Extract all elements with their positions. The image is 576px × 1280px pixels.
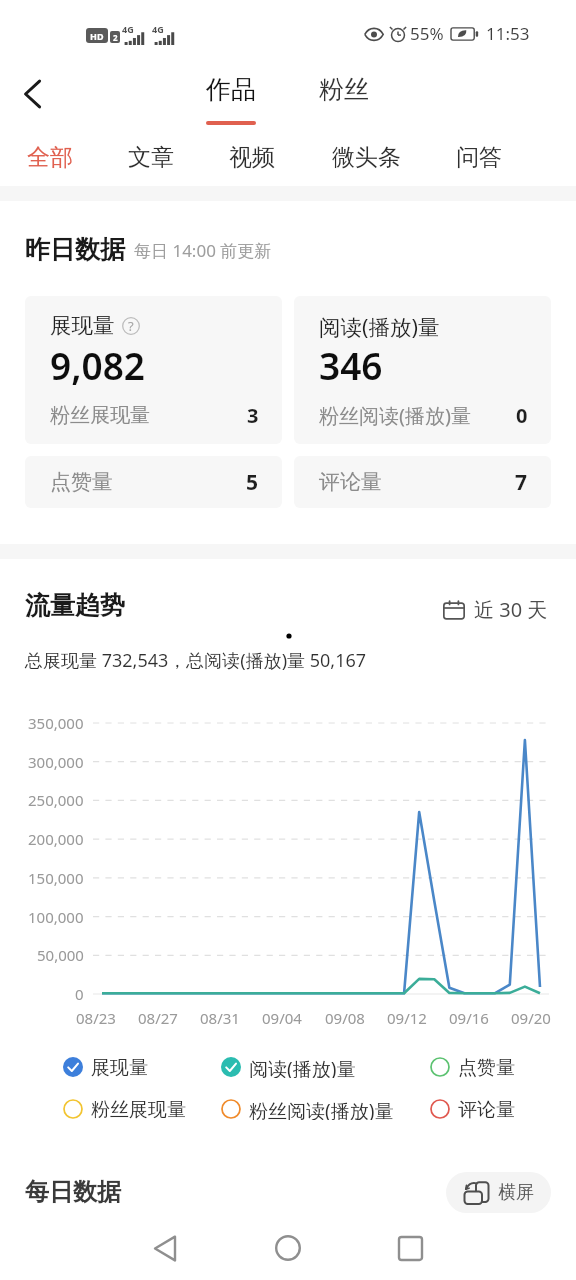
staticText: 总展现量 732,543，总阅读(播放)量 50,167 xyxy=(25,648,367,673)
staticText: 09/08 xyxy=(325,1008,365,1028)
staticText: 350,000 xyxy=(28,713,84,733)
staticText: 2 xyxy=(113,32,118,43)
button[interactable]: 粉丝 xyxy=(309,66,379,116)
staticText: 评论量 xyxy=(319,469,382,495)
button[interactable]: Back xyxy=(6,68,58,120)
button[interactable]: Home xyxy=(260,1220,316,1276)
staticText: 9,082 xyxy=(50,340,145,390)
staticText: 4G xyxy=(122,23,134,35)
button[interactable]: 文章 xyxy=(121,132,181,182)
staticText: 微头条 xyxy=(332,143,401,172)
staticText: 展现量 xyxy=(91,1056,148,1078)
button[interactable]: 阅读(播放)量 xyxy=(294,296,551,444)
staticText: 55% xyxy=(410,22,444,45)
staticText: 08/31 xyxy=(200,1008,240,1028)
staticText: 250,000 xyxy=(28,790,84,810)
button[interactable]: 作品 xyxy=(196,66,266,126)
staticText: 点赞量 xyxy=(50,469,113,495)
staticText: 粉丝 xyxy=(309,74,379,105)
staticText: 点赞量 xyxy=(458,1056,515,1078)
staticText: 0 xyxy=(516,402,528,429)
staticText: HD xyxy=(90,30,104,42)
staticText: 50,000 xyxy=(37,945,84,965)
staticText: 展现量 xyxy=(50,312,115,339)
staticText: 300,000 xyxy=(28,752,84,772)
button[interactable]: 微头条 xyxy=(324,132,408,182)
staticText: 粉丝展现量 xyxy=(50,403,150,428)
staticText: 346 xyxy=(319,340,383,390)
button[interactable]: Recent apps xyxy=(382,1220,438,1276)
staticText: 4G xyxy=(152,23,164,35)
staticText: 问答 xyxy=(456,143,502,172)
staticText: ? xyxy=(128,317,134,335)
staticText: 11:53 xyxy=(486,22,530,45)
button[interactable]: 全部 xyxy=(20,132,80,182)
button[interactable]: 点赞量 xyxy=(430,1056,515,1078)
button[interactable]: 视频 xyxy=(222,132,282,182)
staticText: 横屏 xyxy=(498,1181,534,1204)
staticText: 粉丝展现量 xyxy=(91,1098,186,1120)
button[interactable]: 展现量 xyxy=(25,296,282,444)
staticText: 100,000 xyxy=(28,907,84,927)
button[interactable]: 评论量 xyxy=(294,456,551,508)
staticText: 0 xyxy=(75,984,84,1004)
staticText: 每日数据 xyxy=(25,1177,121,1207)
button[interactable]: 近 30 天 xyxy=(443,596,548,623)
staticText: 7 xyxy=(515,468,528,497)
staticText: 08/23 xyxy=(76,1008,116,1028)
staticText: 3 xyxy=(247,402,259,429)
staticText: 近 30 天 xyxy=(474,596,548,623)
staticText: 阅读(播放)量 xyxy=(249,1056,356,1078)
button[interactable]: 横屏 xyxy=(446,1172,551,1213)
staticText: 5 xyxy=(246,468,259,497)
staticText: 09/20 xyxy=(511,1008,551,1028)
button[interactable]: 阅读(播放)量 xyxy=(221,1056,356,1078)
staticText: 150,000 xyxy=(28,868,84,888)
staticText: 粉丝阅读(播放)量 xyxy=(249,1098,394,1120)
staticText: 昨日数据 xyxy=(25,234,125,265)
staticText: 文章 xyxy=(128,143,174,172)
staticText: 流量趋势 xyxy=(25,590,125,621)
staticText: 视频 xyxy=(229,143,275,172)
staticText: 200,000 xyxy=(28,829,84,849)
button[interactable]: 点赞量 xyxy=(25,456,282,508)
button[interactable]: 展现量 xyxy=(63,1056,148,1078)
staticText: 阅读(播放)量 xyxy=(319,312,440,341)
button[interactable]: Back xyxy=(137,1220,193,1276)
staticText: 09/16 xyxy=(449,1008,489,1028)
staticText: 09/04 xyxy=(262,1008,302,1028)
button[interactable]: 问答 xyxy=(449,132,509,182)
staticText: 评论量 xyxy=(458,1098,515,1120)
staticText: 09/12 xyxy=(387,1008,427,1028)
staticText: 08/27 xyxy=(138,1008,178,1028)
staticText: 作品 xyxy=(196,74,266,105)
staticText: 每日 14:00 前更新 xyxy=(134,239,272,262)
staticText: 全部 xyxy=(27,143,73,172)
button[interactable]: 评论量 xyxy=(430,1098,515,1120)
staticText: 粉丝阅读(播放)量 xyxy=(319,402,471,429)
button[interactable]: 粉丝展现量 xyxy=(63,1098,186,1120)
button[interactable]: 粉丝阅读(播放)量 xyxy=(221,1098,394,1120)
